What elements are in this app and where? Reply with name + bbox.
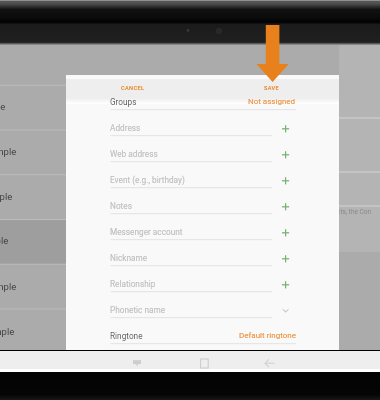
button[interactable]: Web address [66, 136, 339, 162]
button[interactable]: Notes [66, 188, 339, 214]
staticText: Example [0, 281, 17, 292]
staticText: Phonetic name [110, 305, 166, 315]
staticText: CANCEL [121, 85, 145, 92]
button[interactable]: Hide keyboard [123, 351, 151, 369]
button[interactable]: Phonetic name [66, 292, 339, 318]
staticText: Example [0, 191, 13, 202]
button[interactable]: Relationship [66, 266, 339, 292]
staticText: Notes [110, 201, 132, 211]
button[interactable]: Ringtone [66, 318, 339, 336]
button[interactable]: Address [66, 110, 339, 136]
staticText: Messenger account [110, 227, 183, 237]
staticText: Nickname [110, 253, 148, 263]
button[interactable]: Example [0, 310, 66, 355]
staticText: Example [0, 235, 9, 246]
staticText: Default ringtone [239, 331, 296, 340]
button[interactable]: Event (e.g., birthday) [66, 162, 339, 188]
button[interactable]: Groups [66, 98, 339, 110]
staticText: Relationship [110, 279, 156, 289]
button[interactable]: Example [0, 130, 66, 175]
button[interactable]: CANCEL [103, 79, 163, 98]
staticText: Event (e.g., birthday) [110, 175, 185, 185]
staticText: Example [0, 146, 17, 157]
staticText: Example [0, 101, 6, 112]
staticText: Groups [110, 98, 137, 107]
button[interactable]: Example [0, 175, 66, 220]
button[interactable]: Example [0, 265, 66, 310]
staticText: Ringtone [110, 331, 143, 341]
button[interactable]: Example [0, 219, 66, 264]
staticText: Address [110, 123, 141, 133]
staticText: Web address [110, 149, 158, 159]
staticText: cts, the Con [337, 208, 372, 216]
button[interactable]: Nickname [66, 240, 339, 266]
button[interactable]: Back [256, 351, 284, 369]
button[interactable]: Example [0, 85, 66, 130]
button[interactable]: SAVE [242, 79, 302, 98]
staticText: Example [0, 326, 15, 337]
staticText: Not assigned [248, 98, 296, 106]
staticText: SAVE [264, 85, 280, 92]
button[interactable]: Recents [190, 351, 218, 369]
button[interactable]: Messenger account [66, 214, 339, 240]
